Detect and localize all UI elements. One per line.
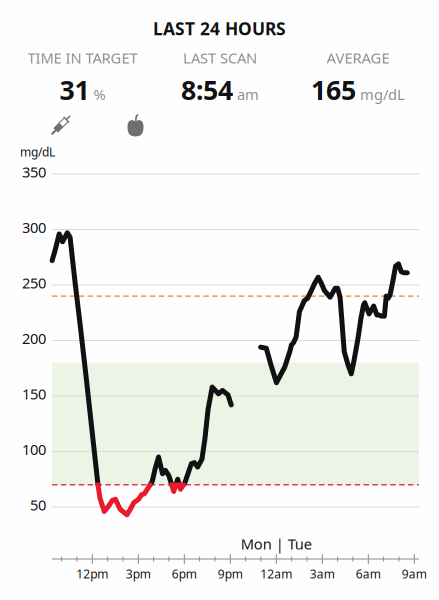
staticText: 9am — [402, 566, 427, 582]
staticText: 6am — [356, 566, 381, 582]
staticText: 12am — [260, 566, 292, 582]
staticText: mg/dL — [360, 85, 405, 104]
staticText: 350 — [22, 162, 46, 181]
staticText: 31 — [59, 72, 89, 107]
staticText: am — [237, 85, 259, 104]
staticText: 9pm — [218, 566, 243, 582]
staticText: 150 — [22, 384, 46, 403]
staticText: 100 — [22, 439, 46, 459]
staticText: 200 — [22, 328, 46, 348]
staticText: 3am — [310, 566, 335, 582]
staticText: AVERAGE — [326, 48, 389, 67]
staticText: 6pm — [172, 566, 197, 582]
staticText: 300 — [22, 217, 46, 237]
staticText: LAST 24 HOURS — [153, 17, 286, 40]
staticText: 3pm — [126, 566, 151, 582]
staticText: 12pm — [76, 566, 108, 582]
staticText: % — [93, 85, 105, 104]
staticText: 50 — [30, 495, 46, 514]
staticText: LAST SCAN — [183, 48, 257, 67]
staticText: Mon | Tue — [241, 534, 312, 553]
staticText: TIME IN TARGET — [27, 48, 137, 67]
staticText: 250 — [22, 273, 46, 292]
staticText: 8:54 — [181, 72, 233, 107]
staticText: mg/dL — [20, 144, 55, 160]
staticText: 165 — [311, 72, 356, 107]
